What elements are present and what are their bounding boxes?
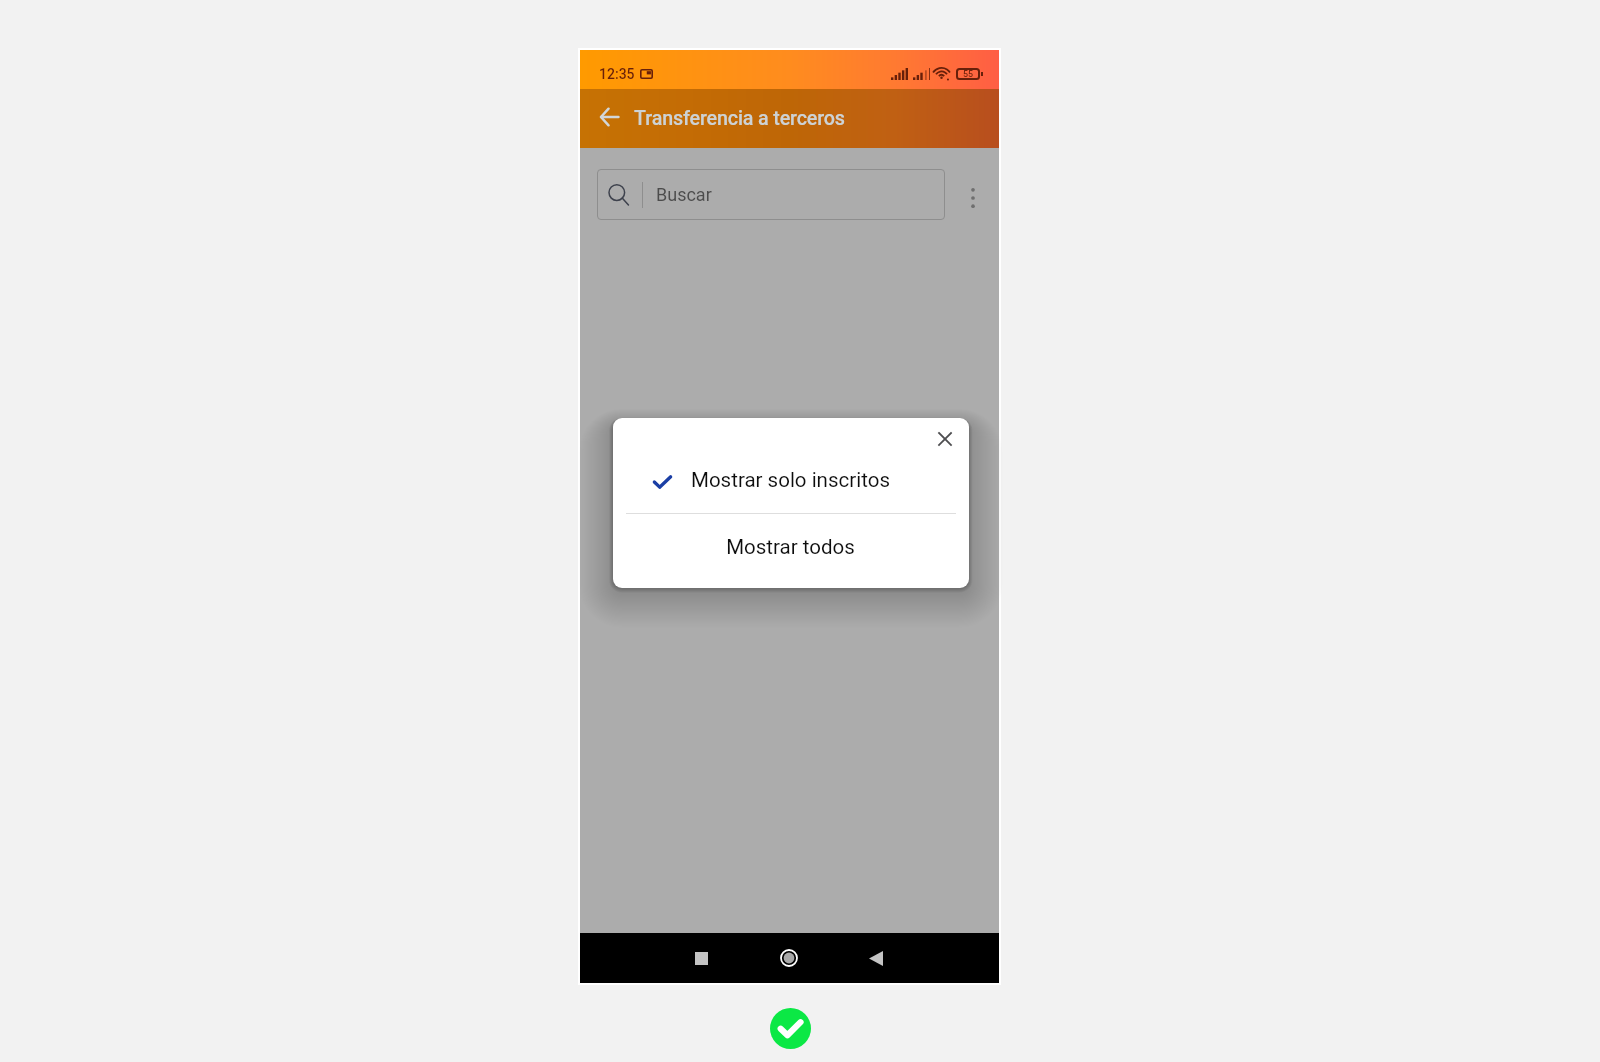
other: Success xyxy=(770,1008,811,1049)
staticText: 55 xyxy=(963,69,974,80)
staticText: Mostrar todos xyxy=(726,535,855,559)
button[interactable]: Close xyxy=(931,425,959,453)
button[interactable]: More options xyxy=(947,174,989,216)
button[interactable]: Back xyxy=(854,934,902,982)
button[interactable]: Mostrar todos xyxy=(613,514,969,588)
button[interactable]: Mostrar solo inscritos xyxy=(613,418,969,513)
button[interactable]: Recents xyxy=(677,934,725,982)
button[interactable]: Buscar xyxy=(597,169,945,220)
button[interactable]: Back xyxy=(587,95,631,139)
staticText: Buscar xyxy=(656,184,712,205)
staticText: 12:35 xyxy=(599,66,635,82)
staticText: Mostrar solo inscritos xyxy=(691,468,890,492)
button[interactable]: Home xyxy=(765,934,813,982)
staticText: Transferencia a terceros xyxy=(634,107,845,130)
